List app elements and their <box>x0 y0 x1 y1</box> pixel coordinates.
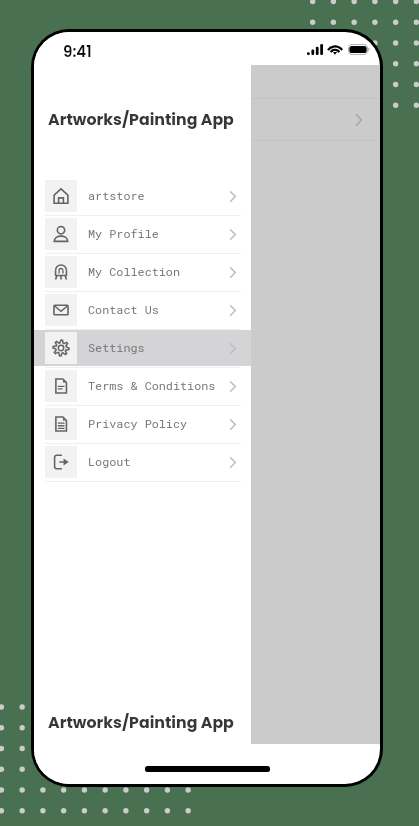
button[interactable]: My Collection <box>34 254 251 290</box>
staticText: Artworks/Painting App <box>48 711 234 733</box>
button[interactable]: Settings <box>34 330 251 366</box>
staticText: artstore <box>88 188 145 204</box>
staticText: Artworks/Painting App <box>48 108 234 130</box>
button[interactable]: My Profile <box>34 216 251 252</box>
button[interactable]: Logout <box>34 444 251 480</box>
button[interactable]: Contact Us <box>34 292 251 328</box>
staticText: My Collection <box>88 264 181 280</box>
staticText: Terms & Conditions <box>88 378 216 394</box>
staticText: Settings <box>88 340 145 356</box>
button[interactable]: artstore <box>34 178 251 214</box>
staticText: Contact Us <box>88 302 159 318</box>
button[interactable]: Privacy Policy <box>34 406 251 442</box>
staticText: 9:41 <box>63 41 92 62</box>
staticText: My Profile <box>88 226 159 242</box>
button[interactable]: Terms & Conditions <box>34 368 251 404</box>
staticText: Privacy Policy <box>88 416 188 432</box>
staticText: Logout <box>88 454 131 470</box>
